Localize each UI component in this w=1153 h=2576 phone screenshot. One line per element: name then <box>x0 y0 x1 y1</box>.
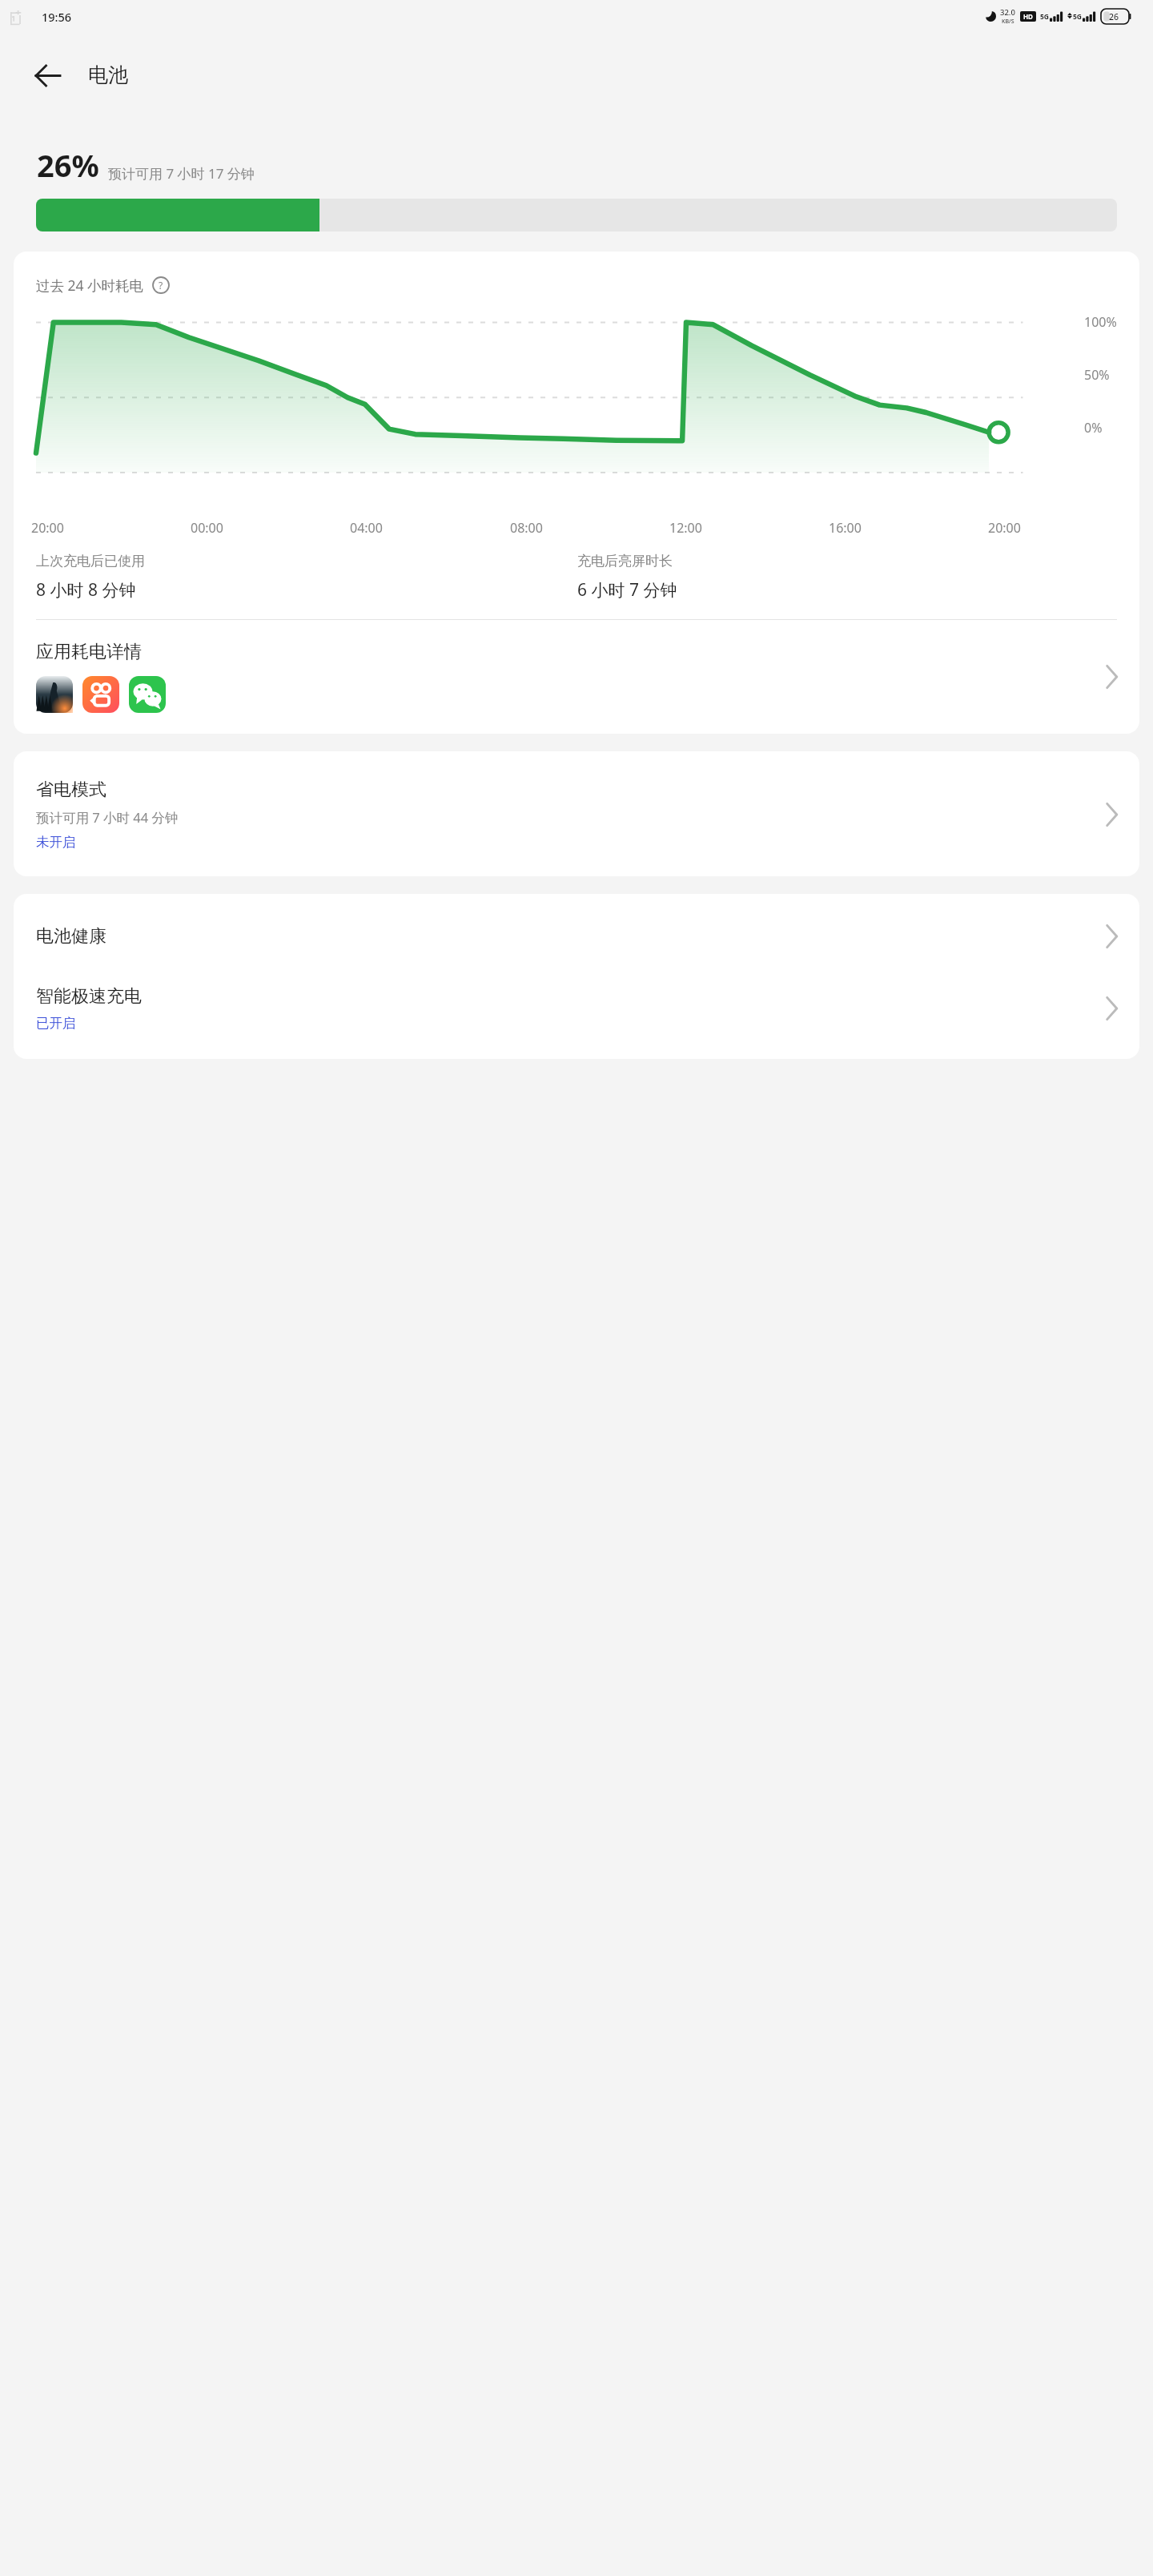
staticText: 过去 24 小时耗电 <box>36 276 144 295</box>
button[interactable]: 返回 <box>22 50 72 100</box>
staticText: 上次充电后已使用 <box>36 553 145 570</box>
staticText: ? <box>159 279 163 292</box>
staticText: 预计可用 7 小时 17 分钟 <box>108 164 255 183</box>
staticText: 8 小时 8 分钟 <box>36 578 136 602</box>
button[interactable]: 帮助 <box>151 276 171 295</box>
staticText: 应用耗电详情 <box>36 641 142 663</box>
staticText: KB/S <box>1002 18 1014 26</box>
button[interactable]: 省电模式 <box>14 751 1139 876</box>
staticText: 20:00 <box>988 519 1021 537</box>
staticText: HD <box>1023 12 1033 21</box>
staticText: 5G <box>1073 12 1083 22</box>
staticText: 未开启 <box>36 834 76 851</box>
staticText: 智能极速充电 <box>36 985 142 1008</box>
staticText: 08:00 <box>510 519 543 537</box>
button[interactable]: 电池健康 <box>14 894 1139 977</box>
staticText: 省电模式 <box>36 779 106 801</box>
staticText: 32.0 <box>1000 7 1015 18</box>
staticText: 电池 <box>88 62 128 87</box>
staticText: 12:00 <box>669 519 702 537</box>
staticText: 预计可用 7 小时 44 分钟 <box>36 808 179 827</box>
staticText: 6 小时 7 分钟 <box>577 578 677 602</box>
staticText: 20:00 <box>31 519 64 537</box>
staticText: 5G <box>1040 12 1050 22</box>
staticText: 50% <box>1084 366 1110 384</box>
button[interactable]: 应用耗电详情 <box>14 620 1139 734</box>
staticText: 26% <box>37 144 99 186</box>
staticText: 100% <box>1084 313 1117 331</box>
staticText: 00:00 <box>191 519 223 537</box>
staticText: 04:00 <box>350 519 383 537</box>
staticText: 充电后亮屏时长 <box>577 553 673 570</box>
button[interactable]: 智能极速充电 <box>14 977 1139 1059</box>
staticText: 19:56 <box>42 9 72 25</box>
staticText: 16:00 <box>829 519 862 537</box>
staticText: 电池健康 <box>36 925 1105 948</box>
staticText: 26 <box>1109 11 1119 22</box>
staticText: 0% <box>1084 419 1103 437</box>
staticText: 已开启 <box>36 1015 76 1032</box>
